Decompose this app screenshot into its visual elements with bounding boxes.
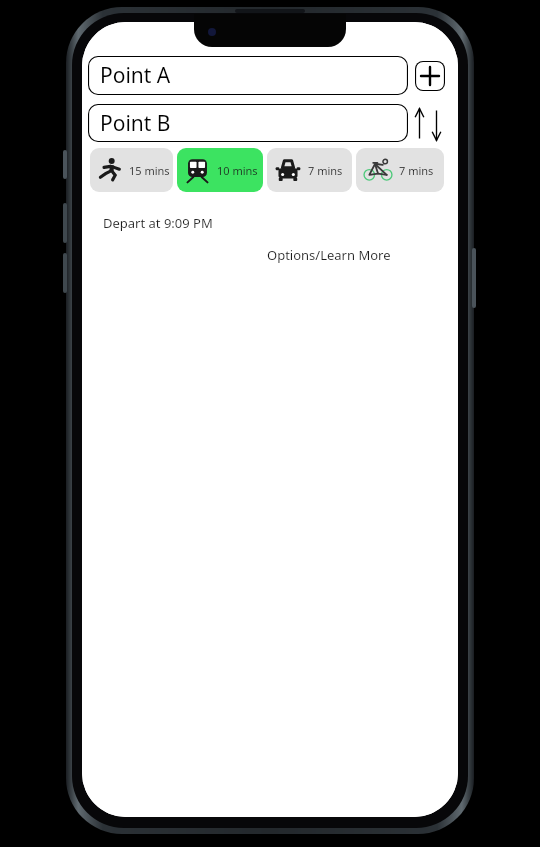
button[interactable]: Point B <box>88 104 408 142</box>
button[interactable]: Add stop <box>415 61 445 91</box>
button[interactable]: Swap start and destination <box>412 105 444 141</box>
staticText: 7 mins <box>308 163 343 178</box>
staticText: Point B <box>100 109 171 138</box>
button[interactable]: Point A <box>88 56 408 95</box>
button[interactable]: Options/Learn More <box>267 246 391 264</box>
button[interactable]: Driving, 7 minutes <box>267 148 352 192</box>
staticText: 10 mins <box>217 163 258 178</box>
staticText: 15 mins <box>129 163 170 178</box>
button[interactable]: Transit, 10 minutes <box>177 148 263 192</box>
button[interactable]: Walking, 15 minutes <box>90 148 173 192</box>
staticText: Depart at 9:09 PM <box>103 214 213 232</box>
staticText: Point A <box>100 61 171 90</box>
button[interactable]: Cycling, 7 minutes <box>356 148 444 192</box>
staticText: 7 mins <box>399 163 434 178</box>
